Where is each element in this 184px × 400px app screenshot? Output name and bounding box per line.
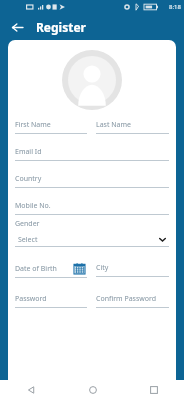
staticText: Last Name (96, 120, 132, 130)
other: Pick date (74, 263, 85, 274)
button[interactable]: City (96, 263, 169, 277)
button[interactable]: Home (62, 380, 123, 400)
staticText: City (96, 263, 109, 273)
button[interactable]: Mobile No. (15, 201, 169, 215)
staticText: Password (15, 294, 47, 304)
button[interactable]: Confirm Password (96, 294, 169, 308)
staticText: Mobile No. (15, 201, 51, 211)
button[interactable]: Password (15, 294, 87, 308)
button[interactable]: First Name (15, 120, 87, 134)
staticText: Date of Birth (15, 264, 57, 274)
button[interactable]: Select (15, 233, 169, 247)
button[interactable]: Recent apps (123, 380, 184, 400)
button[interactable]: Date of Birth (15, 263, 87, 278)
button[interactable]: Email Id (15, 147, 169, 161)
staticText: 8:18 (169, 3, 181, 11)
staticText: First Name (15, 120, 51, 130)
button[interactable]: Last Name (96, 120, 169, 134)
staticText: Confirm Password (96, 294, 157, 304)
staticText: Register (36, 19, 86, 35)
button[interactable]: Profile photo (62, 50, 122, 110)
staticText: Email Id (15, 147, 42, 157)
staticText: Gender (15, 219, 40, 229)
staticText: Country (15, 174, 42, 184)
button[interactable]: Country (15, 174, 169, 188)
staticText: Select (18, 235, 38, 245)
button[interactable]: Back (0, 380, 62, 400)
button[interactable]: Back (6, 16, 28, 38)
